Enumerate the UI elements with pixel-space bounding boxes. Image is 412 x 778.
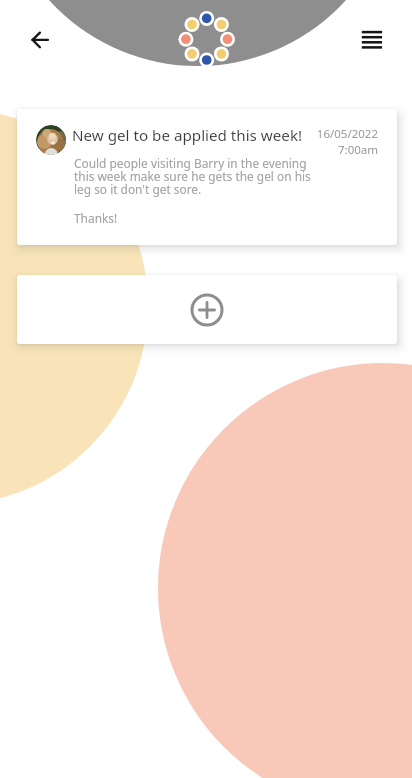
button[interactable]: Add new note	[17, 275, 397, 344]
staticText: 16/05/2022 7:00am	[312, 126, 378, 157]
staticText: Could people visiting Barry in the eveni…	[74, 155, 314, 198]
button[interactable]: Menu	[350, 18, 394, 62]
button[interactable]: Back	[18, 18, 62, 62]
button[interactable]: New gel to be applied this week!	[17, 109, 397, 245]
staticText: New gel to be applied this week!	[72, 125, 303, 146]
staticText: Thanks!	[74, 210, 118, 226]
